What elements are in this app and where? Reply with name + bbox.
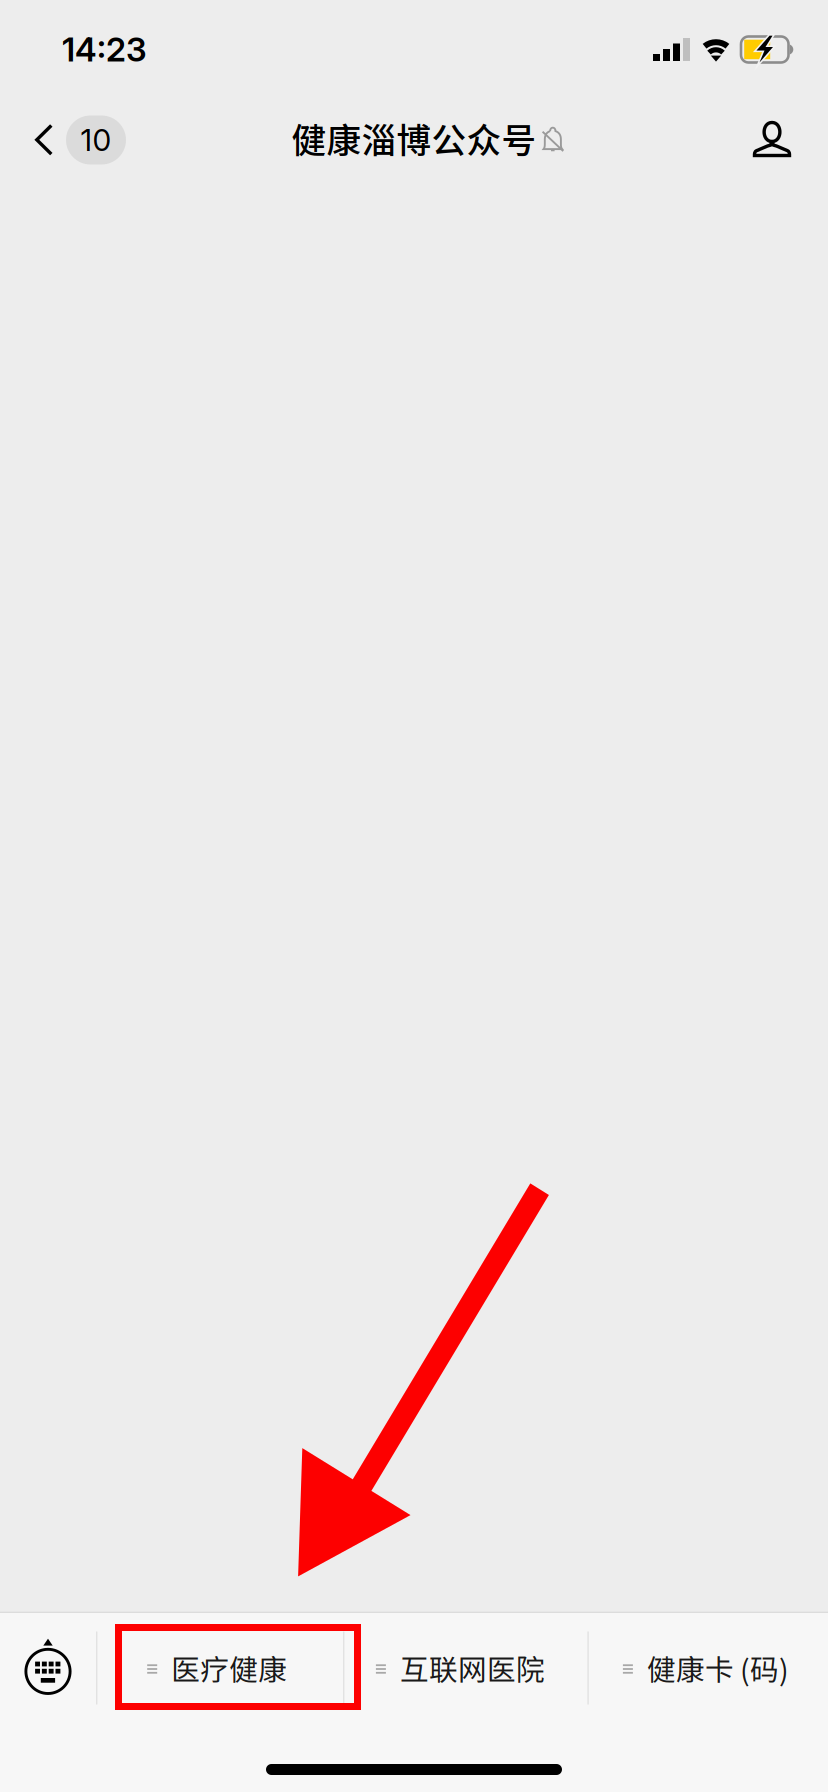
button[interactable]: 健康卡 (码) bbox=[589, 1613, 828, 1723]
button[interactable]: Official account profile bbox=[734, 88, 810, 180]
staticText: 健康卡 (码) bbox=[647, 1647, 789, 1689]
staticText: 14:23 bbox=[62, 29, 147, 69]
staticText: 10 bbox=[80, 122, 111, 158]
staticText: 健康淄博公众号 bbox=[291, 113, 536, 163]
staticText: 互联网医院 bbox=[400, 1647, 545, 1689]
button[interactable]: 互联网医院 bbox=[344, 1613, 587, 1723]
button[interactable]: Switch to keyboard bbox=[0, 1613, 96, 1723]
staticText: 医疗健康 bbox=[171, 1647, 287, 1689]
button[interactable]: Back, 10 unread bbox=[0, 88, 140, 180]
button[interactable]: 医疗健康 bbox=[97, 1613, 343, 1723]
